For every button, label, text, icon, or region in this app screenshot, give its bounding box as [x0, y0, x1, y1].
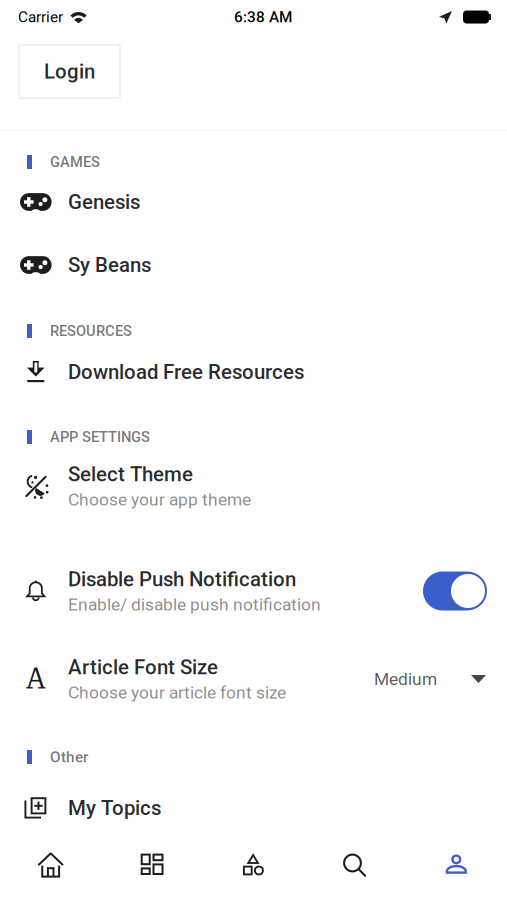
- staticText: Sy Beans: [68, 253, 151, 277]
- button[interactable]: Home: [0, 836, 101, 894]
- button[interactable]: Login: [19, 45, 120, 98]
- button[interactable]: Select Theme: [0, 460, 507, 512]
- staticText: 6:38 AM: [234, 8, 292, 26]
- button[interactable]: A: [0, 653, 507, 705]
- staticText: Genesis: [68, 190, 140, 214]
- staticText: Download Free Resources: [68, 360, 304, 384]
- button[interactable]: Dashboard: [101, 836, 203, 894]
- button[interactable]: Profile: [406, 836, 507, 894]
- staticText: Enable/ disable push notification: [68, 594, 321, 615]
- staticText: APP SETTINGS: [50, 428, 150, 446]
- button[interactable]: Download Free Resources: [0, 350, 507, 394]
- staticText: Choose your app theme: [68, 489, 251, 510]
- button[interactable]: Disable Push Notification: [0, 565, 507, 617]
- button[interactable]: Genesis: [0, 180, 507, 224]
- staticText: Select Theme: [68, 462, 193, 486]
- staticText: RESOURCES: [50, 322, 132, 340]
- staticText: Login: [44, 59, 95, 83]
- staticText: Disable Push Notification: [68, 567, 296, 591]
- staticText: Article Font Size: [68, 655, 218, 679]
- staticText: Medium: [374, 669, 437, 689]
- staticText: Carrier: [18, 8, 63, 26]
- staticText: Choose your article font size: [68, 682, 286, 703]
- staticText: My Topics: [68, 796, 161, 820]
- staticText: GAMES: [50, 153, 100, 171]
- staticText: A: [26, 663, 46, 695]
- button[interactable]: Categories: [203, 836, 304, 894]
- button[interactable]: My Topics: [0, 786, 507, 830]
- staticText: Other: [50, 748, 88, 766]
- button[interactable]: Search: [304, 836, 406, 894]
- button[interactable]: Sy Beans: [0, 243, 507, 287]
